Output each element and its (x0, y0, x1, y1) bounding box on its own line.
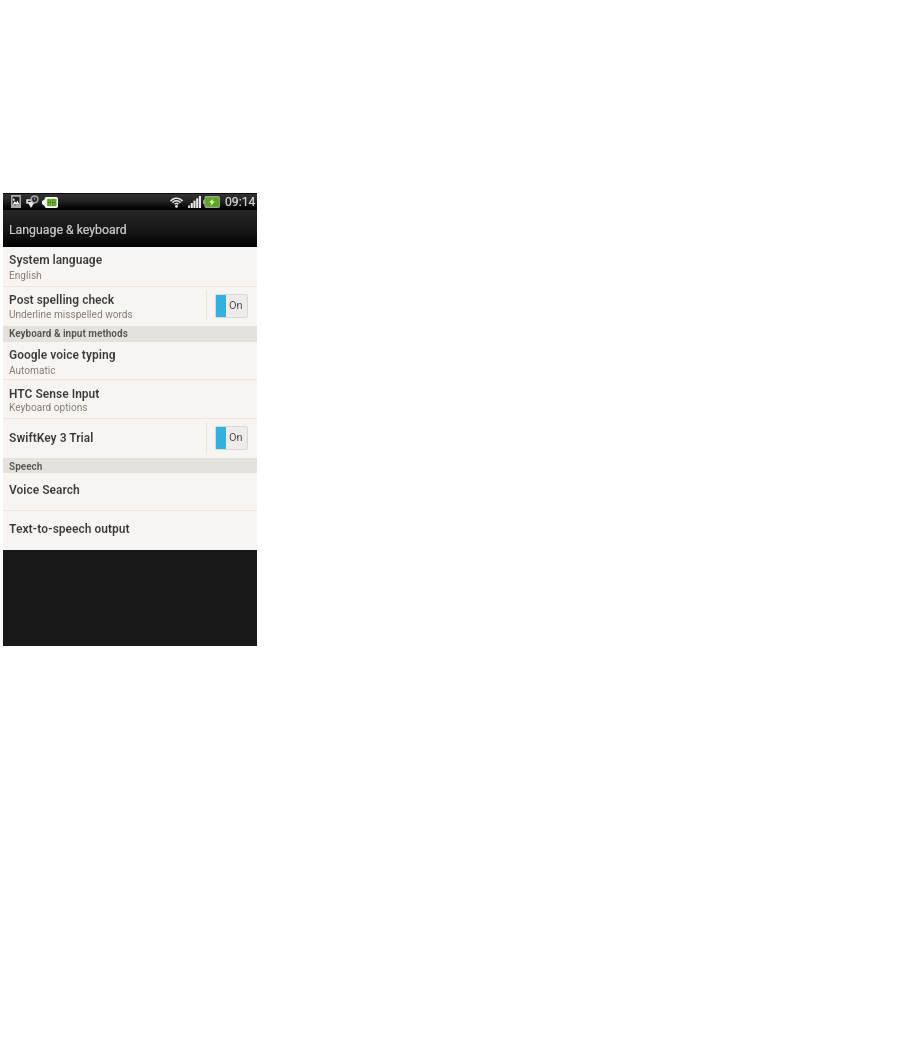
staticText: System language (9, 253, 103, 267)
button[interactable]: HTC Sense Input (3, 380, 257, 418)
button[interactable]: Language & keyboard (3, 210, 257, 247)
staticText: On (229, 299, 243, 312)
button[interactable]: Toggle SwiftKey 3 Trial (215, 426, 248, 450)
staticText: Post spelling check (9, 293, 115, 307)
staticText: Text-to-speech output (9, 522, 130, 536)
staticText: HTC Sense Input (9, 387, 100, 401)
staticText: English (9, 270, 42, 282)
button[interactable]: Status bar, open notifications (3, 193, 257, 210)
button[interactable]: Toggle Post spelling check (215, 294, 248, 318)
staticText: On (229, 431, 243, 444)
staticText: 09:14 (225, 195, 256, 209)
staticText: Speech (9, 461, 43, 473)
button[interactable]: Google voice typing (3, 342, 257, 379)
staticText: Underline misspelled words (9, 309, 133, 321)
staticText: Language & keyboard (9, 223, 127, 237)
staticText: SwiftKey 3 Trial (9, 431, 94, 445)
staticText: Google voice typing (9, 348, 116, 362)
staticText: Voice Search (9, 483, 80, 497)
staticText: Keyboard & input methods (9, 328, 128, 340)
button[interactable]: Voice Search (3, 473, 257, 510)
button[interactable]: System language (3, 247, 257, 286)
button[interactable]: SwiftKey 3 Trial (3, 419, 257, 458)
staticText: Keyboard options (9, 402, 88, 414)
button[interactable]: Post spelling check (3, 287, 257, 326)
staticText: Automatic (9, 365, 56, 377)
button[interactable]: Text-to-speech output (3, 511, 257, 550)
